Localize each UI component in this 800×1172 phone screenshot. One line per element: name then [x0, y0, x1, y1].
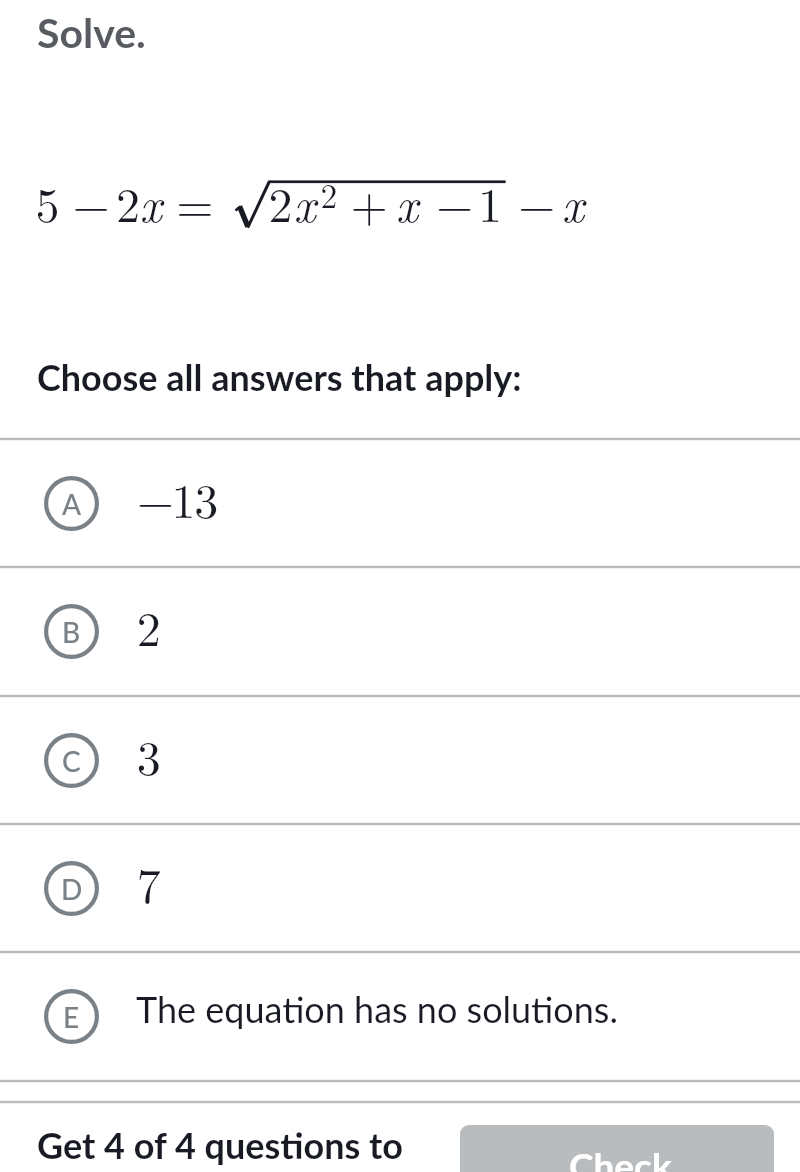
staticText: E [63, 1000, 80, 1034]
staticText: Check [569, 1143, 672, 1172]
button[interactable]: Answer choice A: −13 [0, 439, 800, 567]
button[interactable]: Answer choice B: 2 [0, 567, 800, 696]
staticText: D [61, 872, 83, 906]
button[interactable]: Answer choice D: 7 [0, 824, 800, 952]
staticText: B [62, 615, 81, 649]
button[interactable]: Answer choice C: 3 [0, 696, 800, 824]
staticText: A [62, 487, 82, 521]
button[interactable]: Check [460, 1125, 774, 1172]
button[interactable]: Answer choice E: The equation has no sol… [0, 952, 800, 1081]
staticText: Get 4 of 4 questions to [37, 1123, 403, 1166]
staticText: Solve. [37, 8, 146, 57]
staticText: The equation has no solutions. [136, 987, 618, 1030]
staticText: C [62, 744, 81, 778]
staticText: Choose all answers that apply: [37, 355, 522, 398]
